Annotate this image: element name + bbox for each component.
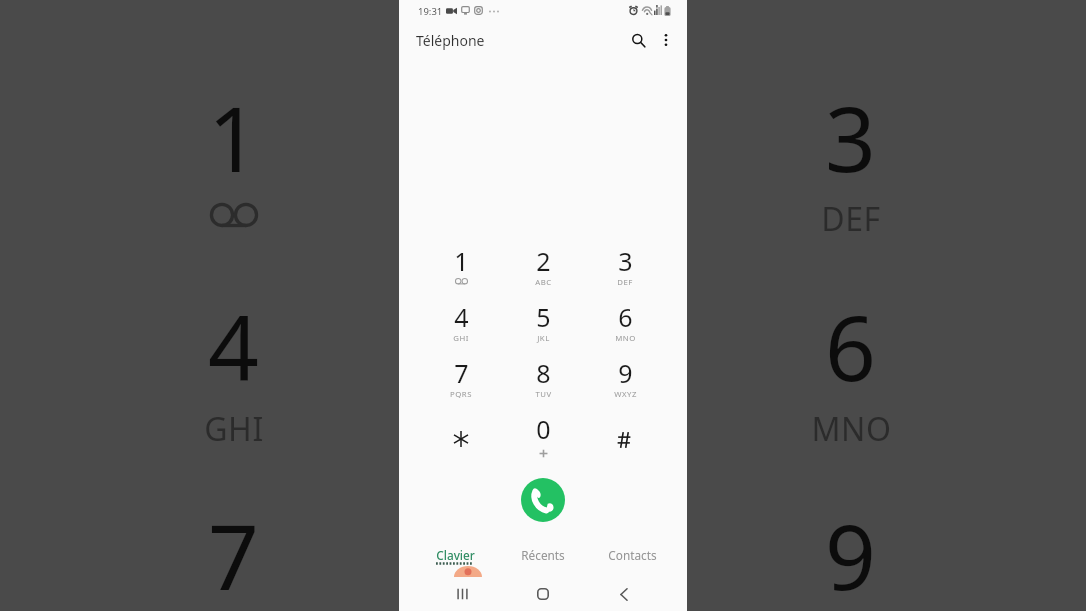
button[interactable]: Clavier xyxy=(411,547,499,583)
button[interactable]: 4 GHI xyxy=(421,291,501,347)
staticText: Clavier xyxy=(436,547,475,563)
staticText: Contacts xyxy=(608,547,657,563)
staticText: Récents xyxy=(521,547,565,563)
staticText: MNO xyxy=(615,333,636,344)
button[interactable]: star xyxy=(421,403,501,459)
staticText: 6 xyxy=(618,300,633,334)
staticText: JKL xyxy=(537,333,550,344)
staticText: WXYZ xyxy=(614,389,637,400)
staticText: 5 xyxy=(536,300,551,334)
button[interactable]: 3 DEF xyxy=(585,235,665,291)
staticText: 3 xyxy=(825,77,876,198)
staticText: ABC xyxy=(535,277,552,288)
staticText: 4 xyxy=(208,286,259,407)
button[interactable]: 1 xyxy=(421,235,501,291)
button[interactable]: Home xyxy=(513,577,573,611)
button[interactable]: 7 PQRS xyxy=(421,347,501,403)
button[interactable]: Recent apps xyxy=(432,577,492,611)
button[interactable]: Call xyxy=(521,478,565,522)
staticText: 3 xyxy=(618,244,633,278)
staticText: 1 xyxy=(208,77,259,198)
staticText: DEF xyxy=(821,197,881,241)
staticText: 2 xyxy=(536,244,551,278)
button[interactable]: 9 WXYZ xyxy=(585,347,665,403)
button[interactable]: 8 TUV xyxy=(503,347,583,403)
staticText: PQRS xyxy=(450,389,472,400)
staticText: Téléphone xyxy=(416,31,485,50)
staticText: TUV xyxy=(535,389,552,400)
staticText: 6 xyxy=(825,286,876,407)
staticText: 1 xyxy=(454,244,469,278)
button[interactable]: pound xyxy=(585,403,665,459)
staticText: 9 xyxy=(618,356,633,390)
button[interactable]: 5 JKL xyxy=(503,291,583,347)
button[interactable]: Contacts xyxy=(588,547,676,583)
staticText: 9 xyxy=(825,495,876,611)
staticText: 0 xyxy=(536,412,551,446)
staticText: DEF xyxy=(617,277,633,288)
button[interactable]: 0 plus xyxy=(503,403,583,459)
staticText: GHI xyxy=(204,407,264,451)
button[interactable]: Search xyxy=(624,26,652,54)
staticText: 7 xyxy=(454,356,469,390)
button[interactable]: More options xyxy=(652,26,680,54)
button[interactable]: Back xyxy=(594,577,654,611)
staticText: 4 xyxy=(454,300,469,334)
staticText: 7 xyxy=(208,495,259,611)
button[interactable]: 2 ABC xyxy=(503,235,583,291)
staticText: MNO xyxy=(811,407,892,451)
staticText: 8 xyxy=(536,356,551,390)
button[interactable]: Récents xyxy=(499,547,587,583)
button[interactable]: 6 MNO xyxy=(585,291,665,347)
staticText: GHI xyxy=(453,333,469,344)
staticText: 19:31 xyxy=(418,5,443,18)
